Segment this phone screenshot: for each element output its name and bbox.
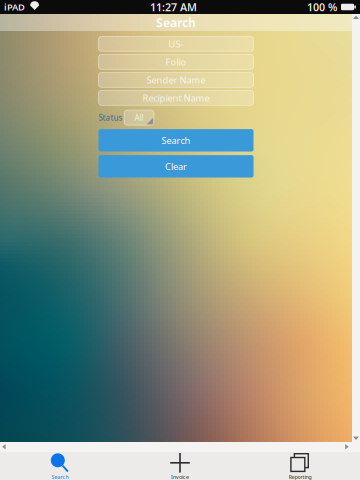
- button[interactable]: Search: [0, 452, 120, 480]
- button[interactable]: All: [124, 110, 154, 125]
- button[interactable]: Search: [98, 129, 253, 151]
- staticText: All: [135, 112, 144, 123]
- staticText: 100 %: [307, 0, 337, 14]
- button[interactable]: Recipient Name: [98, 90, 253, 105]
- button[interactable]: Reporting: [240, 452, 360, 480]
- staticText: Clear: [165, 160, 187, 172]
- button[interactable]: Invoice: [120, 452, 240, 480]
- staticText: Folio: [165, 56, 186, 68]
- staticText: Sender Name: [146, 74, 205, 86]
- button[interactable]: Clear: [98, 155, 253, 177]
- staticText: iPAD: [4, 1, 25, 13]
- staticText: Search: [51, 473, 68, 480]
- button[interactable]: Sender Name: [98, 72, 253, 87]
- staticText: US-: [168, 38, 183, 50]
- button[interactable]: Folio: [98, 54, 253, 69]
- staticText: Invoice: [171, 473, 189, 480]
- staticText: 11:27 AM: [150, 0, 197, 14]
- staticText: Search: [161, 134, 190, 146]
- button[interactable]: US-: [98, 36, 253, 51]
- staticText: Recipient Name: [142, 92, 209, 104]
- staticText: Search: [156, 14, 196, 30]
- staticText: Status: [98, 112, 122, 123]
- staticText: Reporting: [288, 473, 311, 480]
